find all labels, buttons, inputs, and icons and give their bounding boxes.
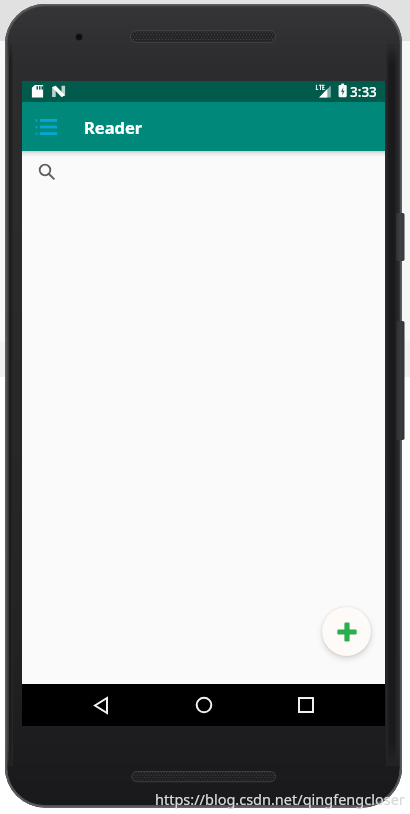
staticText: https://blog.csdn.net/qingfengcloser [155, 789, 405, 809]
button[interactable]: Recent apps [285, 684, 326, 726]
staticText: 3:33 [350, 83, 377, 101]
staticText: Reader [84, 116, 143, 138]
button[interactable]: Back [80, 684, 121, 726]
button[interactable]: Search [27, 152, 63, 188]
button[interactable]: Add [322, 607, 371, 656]
button[interactable]: Home [183, 684, 224, 726]
button[interactable]: Open navigation menu [24, 106, 66, 148]
